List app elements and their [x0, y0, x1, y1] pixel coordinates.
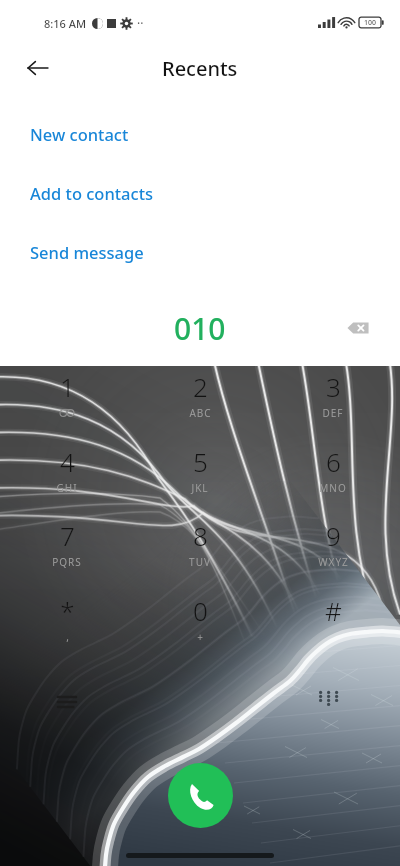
button[interactable]: 4 [12, 444, 122, 512]
staticText: 4 [60, 444, 75, 479]
button[interactable]: New contact [0, 104, 400, 163]
staticText: 8:16 AM [44, 16, 87, 31]
button[interactable]: Dialpad [302, 675, 352, 725]
staticText: TUV [189, 555, 211, 569]
staticText: New contact [30, 123, 129, 145]
button[interactable]: 1 [12, 369, 122, 437]
button[interactable]: 0 [145, 593, 255, 661]
button[interactable]: * [12, 593, 122, 661]
staticText: MNO [319, 481, 347, 495]
button[interactable]: # [278, 593, 388, 661]
staticText: 0 [193, 593, 208, 628]
staticText: # [325, 593, 342, 628]
staticText: Recents [162, 55, 238, 82]
staticText: PQRS [52, 555, 82, 569]
staticText: DEF [322, 406, 344, 420]
staticText: 6 [326, 444, 341, 479]
button[interactable]: 9 [278, 518, 388, 586]
button[interactable]: Back [16, 46, 60, 90]
staticText: 100 [364, 18, 377, 28]
staticText: GHI [56, 481, 78, 495]
staticText: , [66, 630, 70, 644]
staticText: + [197, 630, 204, 644]
staticText: Send message [30, 241, 144, 263]
button[interactable]: 5 [145, 444, 255, 512]
button[interactable]: More options [42, 677, 92, 727]
staticText: ·· [137, 15, 144, 31]
staticText: 9 [326, 518, 341, 553]
button[interactable]: 6 [278, 444, 388, 512]
staticText: 2 [193, 369, 208, 404]
button[interactable]: Call [168, 763, 233, 828]
staticText: 8 [193, 518, 208, 553]
button[interactable]: 2 [145, 369, 255, 437]
staticText: 3 [326, 369, 341, 404]
staticText: JKL [191, 481, 209, 495]
staticText: 1 [60, 369, 75, 404]
button[interactable]: 8 [145, 518, 255, 586]
button[interactable]: Send message [0, 222, 400, 281]
button[interactable]: 3 [278, 369, 388, 437]
button[interactable]: 7 [12, 518, 122, 586]
staticText: WXYZ [318, 555, 349, 569]
staticText: 7 [60, 518, 75, 553]
button[interactable]: Backspace [336, 306, 380, 350]
button[interactable]: Add to contacts [0, 163, 400, 222]
staticText: 010 [174, 308, 226, 349]
staticText: Add to contacts [30, 182, 153, 204]
staticText: ABC [189, 406, 212, 420]
staticText: * [60, 593, 75, 628]
staticText: 5 [193, 444, 208, 479]
